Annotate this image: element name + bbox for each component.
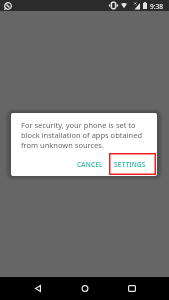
button[interactable]: CANCEL xyxy=(64,155,106,174)
staticText: SETTINGS xyxy=(114,160,146,169)
button[interactable]: SETTINGS xyxy=(106,155,149,174)
staticText: 9:38 xyxy=(150,2,163,11)
staticText: For security, your phone is set to block… xyxy=(21,120,143,150)
button[interactable]: Back xyxy=(20,277,55,300)
button[interactable]: Recent apps xyxy=(114,277,149,300)
button[interactable]: Home xyxy=(67,277,102,300)
staticText: CANCEL xyxy=(77,160,103,169)
